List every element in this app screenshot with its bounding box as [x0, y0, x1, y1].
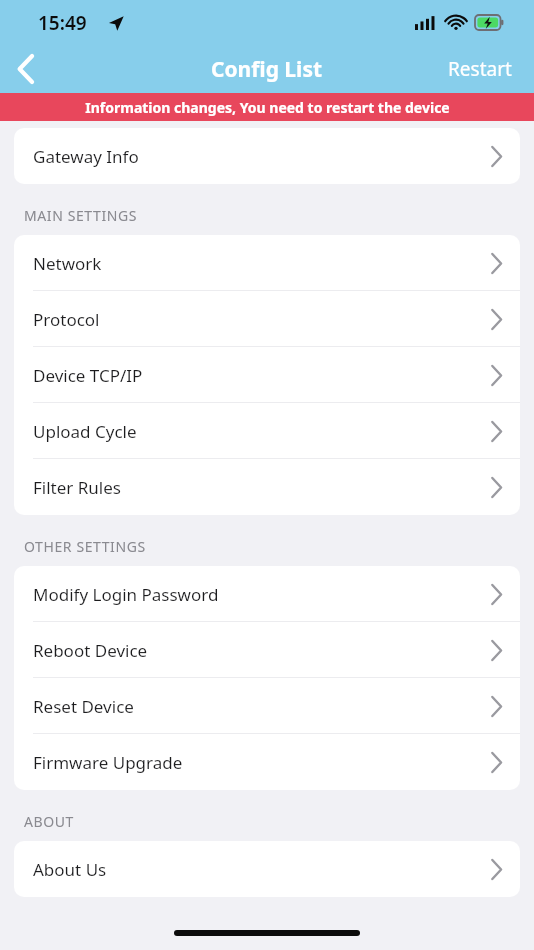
button[interactable]: About Us	[14, 841, 520, 897]
button[interactable]: Filter Rules	[14, 459, 520, 515]
staticText: OTHER SETTINGS	[24, 537, 146, 556]
staticText: Filter Rules	[33, 476, 121, 499]
staticText: Reboot Device	[33, 639, 148, 662]
staticText: Upload Cycle	[33, 420, 137, 443]
staticText: Network	[33, 252, 102, 275]
staticText: 15:49	[38, 10, 87, 36]
staticText: Restart	[448, 56, 512, 82]
button[interactable]: Device TCP/IP	[14, 347, 520, 403]
staticText: ABOUT	[24, 812, 74, 831]
staticText: Device TCP/IP	[33, 364, 143, 387]
button[interactable]: Protocol	[14, 291, 520, 347]
staticText: Modify Login Password	[33, 583, 219, 606]
staticText: Config List	[211, 55, 323, 84]
staticText: Gateway Info	[33, 145, 139, 168]
button[interactable]: Firmware Upgrade	[14, 734, 520, 790]
button[interactable]: Back	[0, 45, 52, 93]
staticText: Protocol	[33, 308, 100, 331]
button[interactable]: Restart	[426, 45, 534, 93]
button[interactable]: Modify Login Password	[14, 566, 520, 622]
staticText: Information changes, You need to restart…	[85, 98, 450, 117]
button[interactable]: Upload Cycle	[14, 403, 520, 459]
button[interactable]: Gateway Info	[14, 128, 520, 184]
button[interactable]: Network	[14, 235, 520, 291]
staticText: Firmware Upgrade	[33, 751, 183, 774]
button[interactable]: Reboot Device	[14, 622, 520, 678]
staticText: Reset Device	[33, 695, 134, 718]
button[interactable]: Reset Device	[14, 678, 520, 734]
staticText: About Us	[33, 858, 107, 881]
staticText: MAIN SETTINGS	[24, 206, 138, 225]
